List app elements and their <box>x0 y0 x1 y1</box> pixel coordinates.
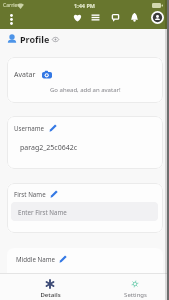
staticText: Avatar <box>14 70 36 80</box>
button[interactable]: More options <box>0 8 22 30</box>
button[interactable]: Enter First Name <box>11 202 158 221</box>
button[interactable]: Edit Username <box>49 124 57 132</box>
staticText: Enter First Name <box>18 208 67 216</box>
button[interactable]: Middle Name <box>7 248 163 273</box>
button[interactable]: Add photo <box>42 70 52 80</box>
button[interactable]: Account <box>148 8 166 26</box>
button[interactable]: Menu <box>86 8 104 26</box>
staticText: First Name <box>14 190 46 198</box>
button[interactable]: Avatar <box>7 57 163 103</box>
staticText: Settings <box>124 291 147 299</box>
staticText: Middle Name <box>16 255 55 263</box>
button[interactable]: Notifications <box>125 8 143 26</box>
staticText: 1:44 PM <box>74 2 95 9</box>
button[interactable]: Visibility <box>50 34 61 45</box>
staticText: Username <box>14 124 45 132</box>
button[interactable]: Username <box>7 116 163 169</box>
staticText: Details <box>40 291 61 299</box>
button[interactable]: Edit First Name <box>50 190 58 198</box>
button[interactable]: Details <box>28 276 72 300</box>
button[interactable]: Edit Middle Name <box>59 255 67 263</box>
button[interactable]: First Name <box>7 183 163 233</box>
button[interactable]: Favorites <box>68 8 86 26</box>
staticText: Go ahead, add an avatar! <box>50 86 121 94</box>
button[interactable]: Messages <box>106 8 124 26</box>
staticText: Profile <box>20 33 50 45</box>
staticText: Carrier <box>3 2 20 9</box>
button[interactable]: Settings <box>113 276 157 300</box>
staticText: parag2_25c0642c <box>20 143 78 153</box>
